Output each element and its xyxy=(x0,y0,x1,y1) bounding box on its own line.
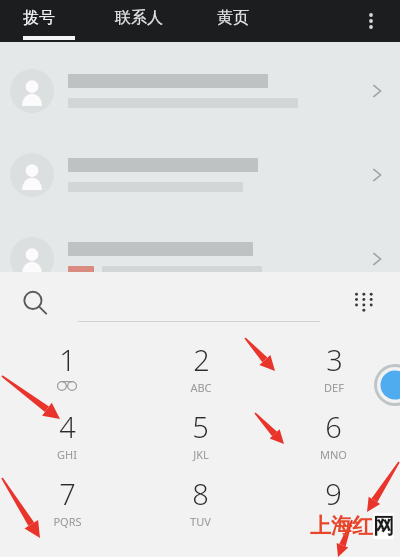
button[interactable]: 4 xyxy=(0,401,134,468)
staticText: 4 xyxy=(59,407,76,446)
button[interactable]: Details xyxy=(0,228,400,290)
button[interactable]: 2 xyxy=(134,334,267,401)
button[interactable]: More options xyxy=(350,0,392,42)
button[interactable]: Details xyxy=(354,144,400,206)
staticText: 黄页 xyxy=(217,8,249,28)
staticText: 9 xyxy=(325,474,342,513)
staticText: 上海红 xyxy=(310,513,373,539)
button[interactable]: Details xyxy=(354,228,400,290)
staticText: 网 xyxy=(373,513,394,539)
staticText: PQRS xyxy=(53,514,82,529)
staticText: GHI xyxy=(57,447,77,462)
button[interactable]: Details xyxy=(354,60,400,122)
button[interactable]: 拨号 xyxy=(23,0,75,42)
button[interactable]: 9 xyxy=(267,468,400,535)
staticText: 拨号 xyxy=(23,8,55,28)
staticText: 8 xyxy=(192,474,209,513)
staticText: 2 xyxy=(193,340,210,379)
staticText: 6 xyxy=(325,407,342,446)
staticText: 1 xyxy=(59,340,76,379)
staticText: TUV xyxy=(190,514,211,529)
staticText: 联系人 xyxy=(115,8,163,28)
button[interactable]: 黄页 xyxy=(217,0,249,42)
button[interactable]: 7 xyxy=(0,468,134,535)
button[interactable]: 6 xyxy=(267,401,400,468)
button[interactable]: Keypad xyxy=(342,281,386,325)
staticText: JKL xyxy=(193,447,209,462)
staticText: 7 xyxy=(59,474,76,513)
button[interactable]: Search xyxy=(12,280,58,326)
button[interactable]: Details xyxy=(0,144,400,206)
staticText: DEF xyxy=(324,380,344,395)
staticText: MNO xyxy=(320,447,347,462)
staticText: 3 xyxy=(326,340,343,379)
button[interactable]: 联系人 xyxy=(115,0,163,42)
button[interactable]: 3 xyxy=(267,334,400,401)
button[interactable]: 1 xyxy=(0,334,134,401)
staticText: ABC xyxy=(190,380,212,395)
button[interactable]: 5 xyxy=(134,401,267,468)
button[interactable]: Details xyxy=(0,60,400,122)
button[interactable]: 8 xyxy=(134,468,267,535)
staticText: 5 xyxy=(192,407,209,446)
